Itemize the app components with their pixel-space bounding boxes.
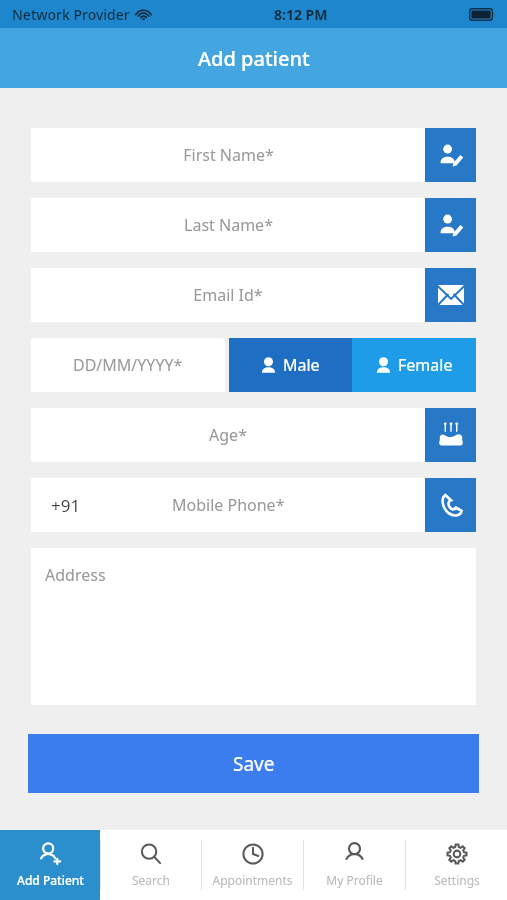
staticText: Add Patient (17, 872, 84, 888)
staticText: Address (45, 564, 106, 586)
staticText: Save (233, 751, 275, 777)
button[interactable]: Email Id* (31, 268, 476, 322)
staticText: Email Id* (193, 284, 263, 306)
other: Edit name (425, 198, 476, 252)
button[interactable]: First Name* (31, 128, 476, 182)
staticText: Age* (209, 424, 247, 446)
staticText: Mobile Phone* (172, 494, 285, 516)
staticText: Last Name* (184, 214, 273, 236)
staticText: First Name* (183, 144, 274, 166)
button[interactable]: Search (101, 830, 201, 900)
button[interactable]: Male (229, 338, 352, 392)
button[interactable]: Add Patient (0, 830, 100, 900)
other: Edit name (425, 128, 476, 182)
button[interactable]: Settings (406, 830, 507, 900)
staticText: Male (283, 354, 320, 376)
button[interactable]: +91 (31, 478, 476, 532)
staticText: Network Provider (12, 5, 130, 24)
staticText: Appointments (212, 872, 293, 888)
button[interactable]: Address (31, 548, 476, 705)
button[interactable]: Last Name* (31, 198, 476, 252)
button[interactable]: My Profile (304, 830, 405, 900)
staticText: Settings (434, 872, 480, 888)
other: Age (425, 408, 476, 462)
staticText: Add patient (198, 45, 310, 72)
staticText: 8:12 PM (274, 5, 328, 24)
button[interactable]: DD/MM/YYYY* (31, 338, 225, 392)
staticText: DD/MM/YYYY* (73, 354, 183, 376)
staticText: +91 (51, 494, 81, 517)
other: Email (425, 268, 476, 322)
staticText: Search (132, 872, 170, 888)
button[interactable]: Female (352, 338, 476, 392)
button[interactable]: Age* (31, 408, 476, 462)
button[interactable]: Save (28, 734, 479, 793)
staticText: Female (398, 354, 453, 376)
staticText: My Profile (326, 872, 383, 888)
other: Phone (425, 478, 476, 532)
button[interactable]: Appointments (202, 830, 303, 900)
